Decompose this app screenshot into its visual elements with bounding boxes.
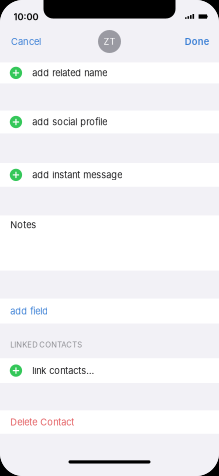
staticText: 10:00 <box>14 11 39 22</box>
staticText: add field <box>10 305 48 317</box>
button[interactable]: Contact photo <box>98 30 121 53</box>
button[interactable]: add field <box>0 299 219 323</box>
staticText: Delete Contact <box>10 416 74 428</box>
staticText: LINKED CONTACTS <box>10 340 82 349</box>
button[interactable]: add related name <box>0 62 219 83</box>
button[interactable]: Done <box>185 31 219 52</box>
button[interactable]: Cancel <box>0 31 41 52</box>
button[interactable]: link contacts… <box>0 358 219 383</box>
staticText: ZT <box>103 36 115 47</box>
button[interactable]: add instant message <box>0 163 219 187</box>
staticText: Cancel <box>11 36 41 47</box>
button[interactable]: Delete Contact <box>0 410 219 434</box>
staticText: Done <box>185 36 210 47</box>
button[interactable]: add social profile <box>0 111 219 133</box>
staticText: link contacts… <box>32 365 94 376</box>
staticText: add instant message <box>32 169 122 180</box>
staticText: add related name <box>32 67 107 78</box>
staticText: Notes <box>10 219 36 230</box>
staticText: add social profile <box>32 116 107 127</box>
